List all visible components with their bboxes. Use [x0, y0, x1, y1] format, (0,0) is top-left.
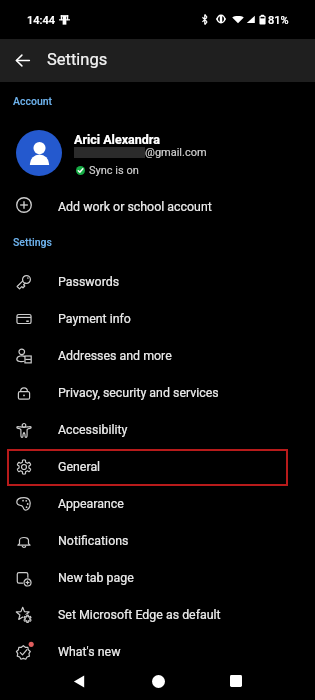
button[interactable]: Appearance: [0, 485, 315, 522]
staticText: Sync is on: [89, 164, 139, 177]
button[interactable]: Payment info: [0, 300, 315, 337]
staticText: 81%: [268, 14, 289, 27]
staticText: Accessibility: [58, 422, 128, 437]
button[interactable]: Set Microsoft Edge as default: [0, 596, 315, 633]
staticText: Addresses and more: [58, 348, 172, 363]
button[interactable]: Arici Alexandra: [0, 118, 315, 186]
button[interactable]: Notifications: [0, 522, 315, 559]
button[interactable]: Home: [141, 664, 175, 698]
staticText: Set Microsoft Edge as default: [58, 607, 221, 622]
staticText: Privacy, security and services: [58, 385, 219, 400]
button[interactable]: Recent apps: [219, 664, 253, 698]
button[interactable]: Privacy, security and services: [0, 374, 315, 411]
staticText: New tab page: [58, 570, 134, 585]
staticText: Appearance: [58, 496, 124, 511]
staticText: Account: [13, 95, 53, 107]
staticText: General: [58, 459, 101, 474]
button[interactable]: Navigate up: [8, 46, 37, 75]
button[interactable]: New tab page: [0, 559, 315, 596]
button[interactable]: Add work or school account: [0, 186, 315, 223]
staticText: Notifications: [58, 533, 129, 548]
staticText: Payment info: [58, 311, 131, 326]
button[interactable]: Back: [62, 664, 96, 698]
button[interactable]: General: [0, 448, 315, 485]
staticText: What's new: [58, 644, 121, 659]
button[interactable]: What's new: [0, 633, 315, 670]
staticText: Settings: [47, 50, 108, 69]
staticText: Passwords: [58, 274, 120, 289]
button[interactable]: Addresses and more: [0, 337, 315, 374]
staticText: Arici Alexandra: [74, 132, 160, 147]
button[interactable]: Passwords: [0, 263, 315, 300]
staticText: Settings: [13, 236, 52, 248]
staticText: Add work or school account: [58, 199, 212, 214]
staticText: 14:44: [27, 14, 55, 27]
button[interactable]: Accessibility: [0, 411, 315, 448]
staticText: @gmail.com: [145, 146, 207, 159]
